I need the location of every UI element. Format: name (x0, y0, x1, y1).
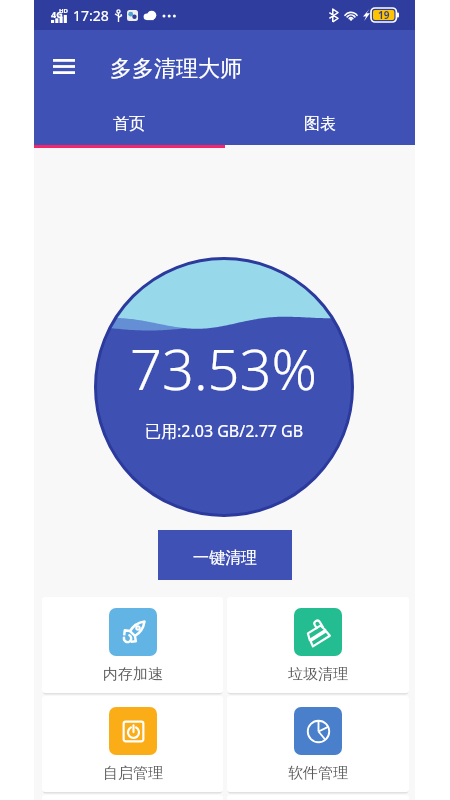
staticText: 一键清理 (193, 548, 257, 568)
staticText: 19 (378, 8, 390, 22)
button[interactable]: 内存加速 (42, 597, 223, 693)
staticText: 4G (51, 8, 63, 20)
staticText: 73.53% (130, 330, 318, 406)
staticText: 垃圾清理 (288, 665, 348, 684)
button[interactable]: Menu (42, 44, 86, 88)
button[interactable]: 首页 (34, 98, 224, 145)
staticText: 自启管理 (103, 764, 163, 783)
staticText: HD (59, 7, 68, 15)
button[interactable]: 软件管理 (227, 696, 409, 792)
staticText: 内存加速 (103, 665, 163, 684)
staticText: 图表 (304, 114, 336, 134)
button[interactable]: 垃圾清理 (227, 597, 409, 693)
button[interactable]: 一键清理 (158, 530, 292, 580)
button[interactable]: 图表 (224, 98, 415, 145)
button[interactable]: 自启管理 (42, 696, 223, 792)
staticText: 首页 (113, 114, 145, 134)
staticText: 多多清理大师 (110, 55, 242, 83)
staticText: 17:28 (73, 6, 109, 25)
staticText: 软件管理 (288, 764, 348, 783)
staticText: 已用:2.03 GB/2.77 GB (145, 420, 304, 442)
